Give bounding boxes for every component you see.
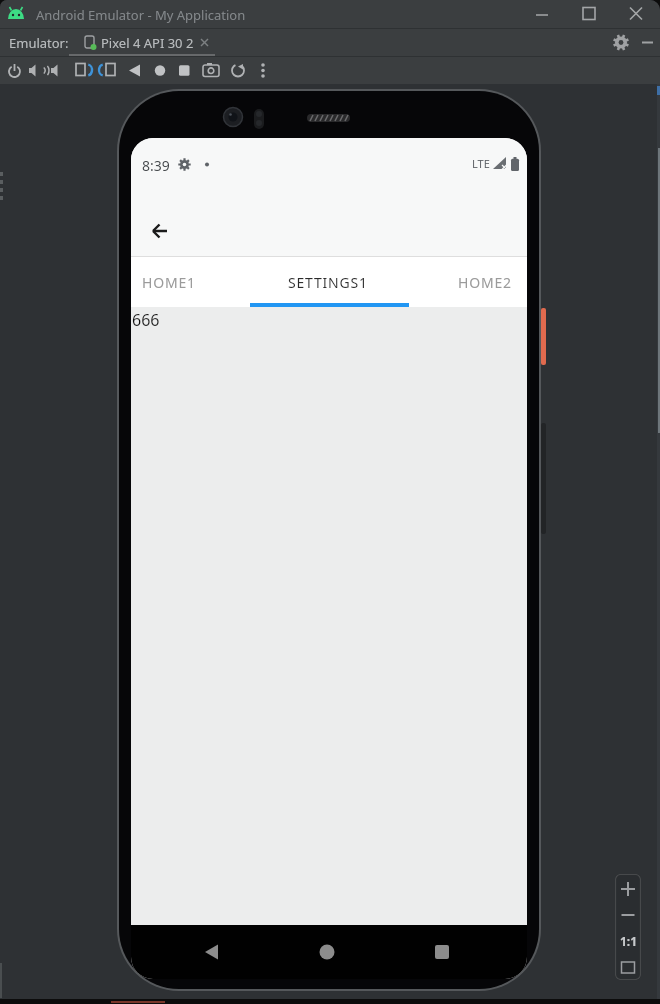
button[interactable] (120, 57, 144, 84)
button[interactable] (146, 217, 174, 245)
staticText: LTE (472, 156, 490, 171)
button[interactable] (192, 57, 216, 84)
staticText: 666 (132, 309, 160, 331)
button[interactable] (615, 952, 641, 978)
button[interactable] (144, 57, 168, 84)
staticText: HOME1 (142, 273, 196, 292)
staticText: Pixel 4 API 30 2 (101, 34, 194, 52)
button[interactable] (240, 57, 264, 84)
button[interactable]: Pixel 4 API 30 2 (84, 29, 209, 56)
staticText: 1:1 (620, 933, 638, 949)
button[interactable] (216, 57, 240, 84)
button[interactable] (612, 34, 654, 51)
button[interactable] (0, 57, 24, 84)
button[interactable] (615, 926, 641, 952)
button[interactable] (615, 874, 641, 900)
button[interactable] (72, 57, 96, 84)
button[interactable] (312, 937, 342, 967)
button[interactable] (615, 900, 641, 926)
button[interactable]: HOME1 (131, 257, 244, 307)
button[interactable] (24, 57, 48, 84)
button[interactable] (48, 57, 72, 84)
button[interactable] (96, 57, 120, 84)
button[interactable] (427, 937, 457, 967)
button[interactable]: SETTINGS1 (253, 257, 403, 307)
button[interactable] (536, 6, 656, 22)
staticText: Android Emulator - My Application (36, 6, 246, 24)
button[interactable]: HOME2 (410, 257, 527, 307)
staticText: 8:39 (142, 156, 170, 175)
staticText: HOME2 (458, 273, 512, 292)
button[interactable] (168, 57, 192, 84)
staticText: Emulator: (9, 34, 69, 52)
button[interactable] (197, 937, 227, 967)
staticText: SETTINGS1 (288, 273, 368, 292)
